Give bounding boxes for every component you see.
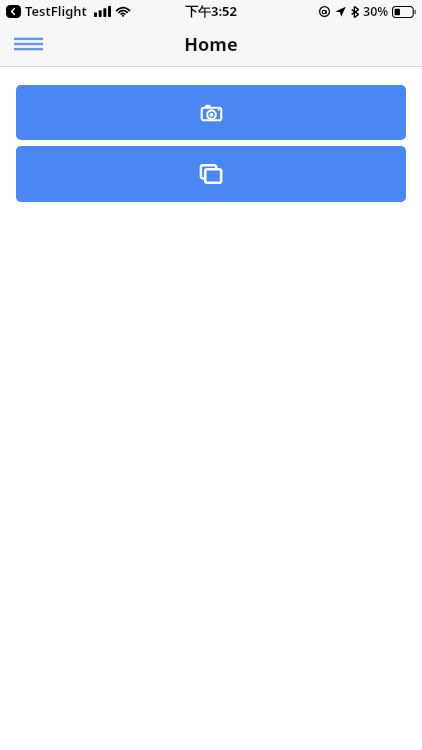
- staticText: Home: [184, 32, 238, 57]
- button[interactable]: Choose from library: [16, 146, 406, 202]
- button[interactable]: Open navigation menu: [6, 22, 50, 66]
- staticText: 下午3:52: [185, 2, 237, 20]
- staticText: 30%: [363, 3, 389, 20]
- button[interactable]: Take photo: [16, 85, 406, 140]
- staticText: TestFlight: [25, 2, 87, 20]
